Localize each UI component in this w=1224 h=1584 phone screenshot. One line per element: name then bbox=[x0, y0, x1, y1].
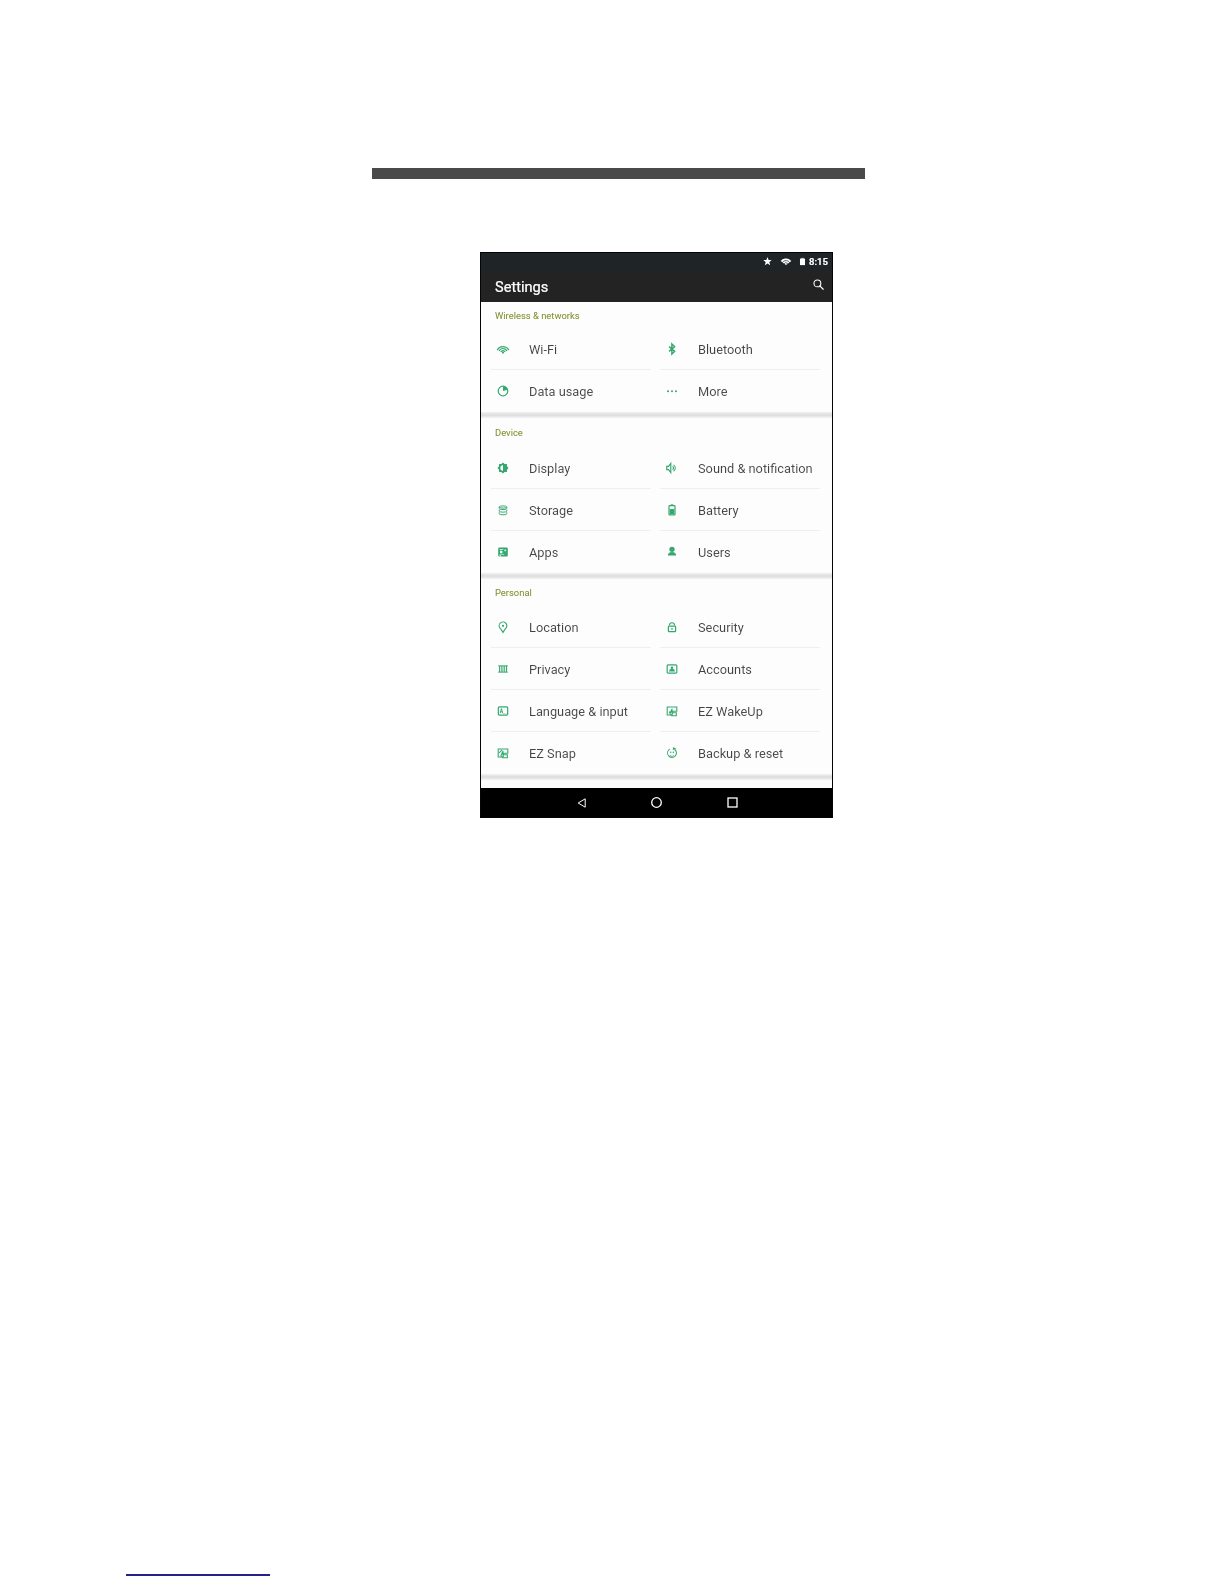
staticText: Storage bbox=[529, 503, 573, 518]
button[interactable]: Backup & reset bbox=[650, 732, 819, 774]
button[interactable]: Battery bbox=[650, 489, 819, 531]
staticText: Users bbox=[698, 545, 731, 560]
button[interactable]: Privacy bbox=[481, 648, 650, 690]
staticText: Display bbox=[529, 461, 571, 476]
button[interactable]: Recent apps bbox=[718, 788, 746, 817]
staticText: Device bbox=[495, 427, 523, 438]
staticText: EZ WakeUp bbox=[698, 704, 763, 719]
staticText: Accounts bbox=[698, 662, 752, 677]
button[interactable]: More bbox=[650, 370, 819, 412]
button[interactable]: Storage bbox=[481, 489, 650, 531]
staticText: 8:15 bbox=[809, 256, 828, 267]
button[interactable]: Wi-Fi bbox=[481, 328, 650, 370]
staticText: Privacy bbox=[529, 662, 571, 677]
button[interactable]: EZ WakeUp bbox=[650, 690, 819, 732]
button[interactable]: Users bbox=[650, 531, 819, 573]
staticText: Bluetooth bbox=[698, 342, 753, 357]
button[interactable]: Language & input bbox=[481, 690, 650, 732]
staticText: Battery bbox=[698, 503, 739, 518]
staticText: Language & input bbox=[529, 704, 629, 719]
button[interactable]: Security bbox=[650, 606, 819, 648]
staticText: More bbox=[698, 384, 728, 399]
staticText: Apps bbox=[529, 545, 559, 560]
staticText: Backup & reset bbox=[698, 746, 784, 761]
button[interactable]: Bluetooth bbox=[650, 328, 819, 370]
button[interactable]: Home bbox=[642, 788, 670, 817]
button[interactable]: Accounts bbox=[650, 648, 819, 690]
button[interactable]: EZ Snap bbox=[481, 732, 650, 774]
staticText: Sound & notification bbox=[698, 461, 813, 476]
button[interactable]: Search bbox=[806, 272, 830, 296]
staticText: EZ Snap bbox=[529, 746, 576, 761]
staticText: Personal bbox=[495, 587, 532, 598]
staticText: Security bbox=[698, 620, 744, 635]
staticText: Data usage bbox=[529, 384, 594, 399]
button[interactable]: Display bbox=[481, 447, 650, 489]
staticText: Wi-Fi bbox=[529, 342, 558, 357]
button[interactable]: Location bbox=[481, 606, 650, 648]
button[interactable]: Apps bbox=[481, 531, 650, 573]
staticText: Location bbox=[529, 620, 579, 635]
staticText: Settings bbox=[495, 278, 549, 295]
button[interactable]: Sound & notification bbox=[650, 447, 819, 489]
staticText: Wireless & networks bbox=[495, 310, 580, 321]
button[interactable]: Data usage bbox=[481, 370, 650, 412]
button[interactable]: Back bbox=[568, 788, 596, 817]
